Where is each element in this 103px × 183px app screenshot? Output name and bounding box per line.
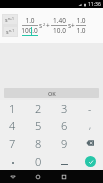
staticText: s (39, 21, 43, 30)
button[interactable]: , (77, 117, 103, 134)
staticText: 9 (61, 136, 68, 151)
button[interactable]: Space (51, 152, 77, 170)
staticText: 10.0 (53, 26, 66, 35)
button[interactable]: 4 (0, 117, 25, 134)
staticText: n+1 (8, 16, 15, 21)
button[interactable] (0, 152, 25, 170)
staticText: 8 (35, 136, 42, 151)
staticText: 7 (9, 136, 16, 151)
staticText: 0 (35, 154, 42, 169)
button[interactable]: Back (0, 170, 25, 183)
staticText: 2 (43, 22, 46, 27)
staticText: - (88, 102, 92, 116)
button[interactable]: 6 (51, 117, 77, 134)
button[interactable]: 7 (0, 134, 25, 152)
staticText: s (5, 16, 8, 23)
staticText: 5 (35, 118, 42, 133)
button[interactable]: OK (4, 88, 99, 98)
button[interactable]: 3 (51, 100, 77, 117)
button[interactable]: 5 (25, 117, 51, 134)
button[interactable]: 0 (25, 152, 51, 170)
staticText: OK (48, 90, 56, 97)
staticText: 1.0 (76, 26, 86, 35)
staticText: 3 (61, 101, 68, 116)
staticText: 1.0 (76, 16, 86, 25)
button[interactable]: Home (25, 170, 51, 183)
staticText: s+ (68, 21, 75, 30)
staticText: 1.0 (25, 16, 35, 25)
staticText: 11:36 (88, 1, 101, 8)
staticText: s (6, 28, 9, 35)
staticText: , (89, 119, 92, 131)
staticText: n-1 (9, 28, 15, 33)
button[interactable]: 9 (51, 134, 77, 152)
staticText: + (46, 21, 50, 30)
staticText: 1 (9, 101, 16, 116)
staticText: 1.40 (53, 16, 66, 25)
button[interactable]: Recents (51, 170, 77, 183)
button[interactable]: 1 (0, 100, 25, 117)
button[interactable]: 8 (25, 134, 51, 152)
staticText: 100.0 (21, 26, 38, 35)
staticText: 6 (61, 118, 68, 133)
staticText: 4 (9, 118, 16, 133)
button[interactable]: Confirm (77, 152, 103, 170)
button[interactable]: 2 (25, 100, 51, 117)
button[interactable]: Delete (77, 134, 103, 152)
staticText: 2 (35, 101, 42, 116)
button[interactable]: - (77, 100, 103, 117)
